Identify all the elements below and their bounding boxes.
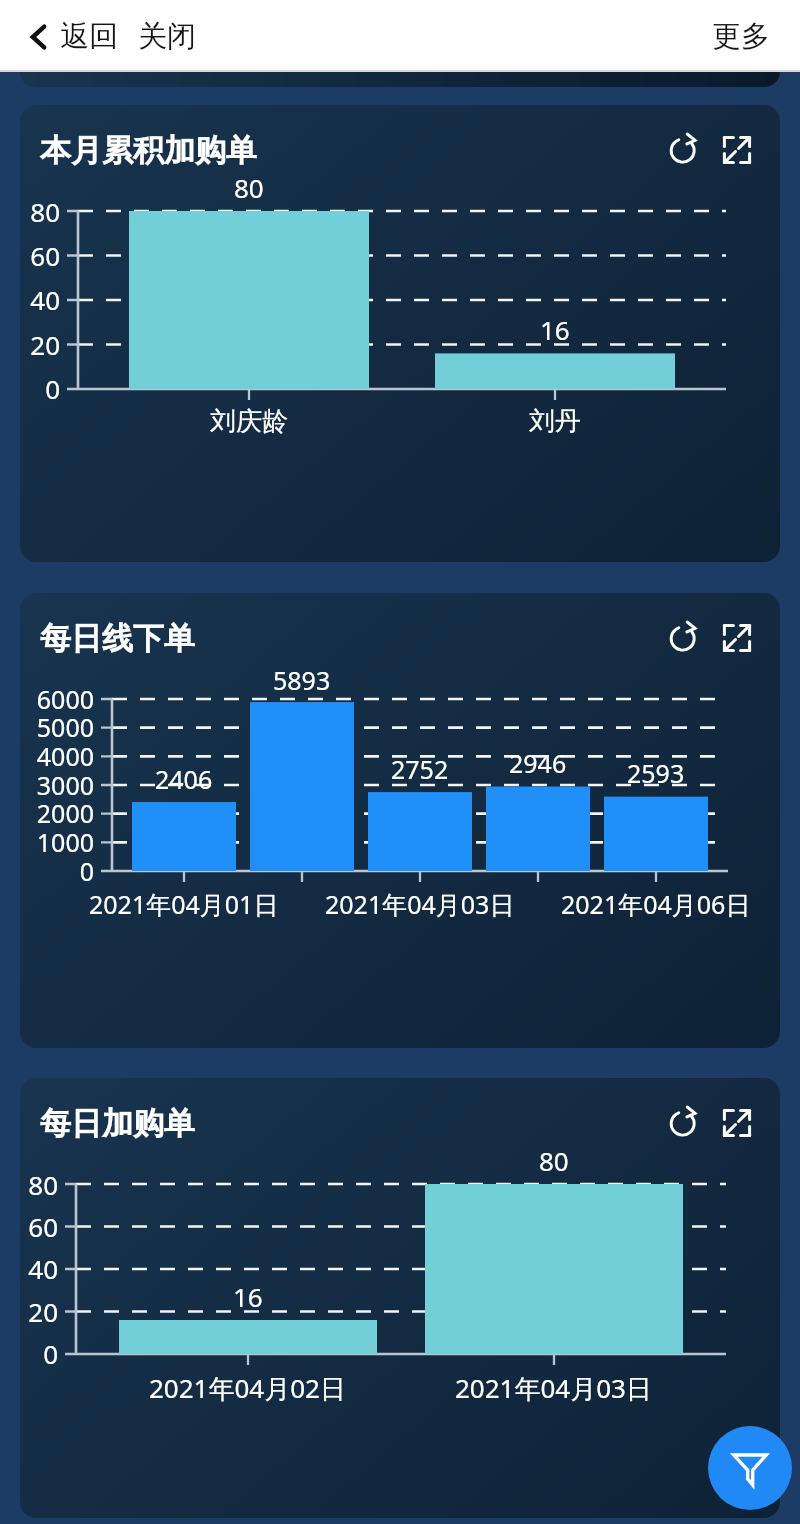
staticText: 16 — [540, 312, 570, 347]
staticText: 2021年04月03日 — [455, 1370, 652, 1406]
staticText: 2021年04月01日 — [89, 887, 279, 921]
staticText: 2406 — [155, 762, 213, 796]
button[interactable]: Refresh — [660, 127, 706, 173]
staticText: 20 — [28, 1294, 58, 1329]
staticText: 5893 — [273, 663, 331, 697]
staticText: 3000 — [36, 768, 94, 802]
staticText: 0 — [43, 1336, 58, 1371]
staticText: 返回 — [60, 18, 118, 55]
staticText: 2593 — [627, 756, 685, 790]
button[interactable]: 更多 — [712, 18, 770, 55]
staticText: 40 — [28, 1251, 58, 1286]
button[interactable]: Back — [26, 18, 122, 55]
staticText: 2021年04月06日 — [561, 887, 751, 921]
button[interactable]: Refresh — [660, 1100, 706, 1146]
staticText: 每日加购单 — [40, 1104, 195, 1143]
button[interactable]: Expand — [714, 615, 760, 661]
staticText: 1000 — [36, 825, 94, 859]
staticText: 16 — [233, 1279, 263, 1314]
staticText: 更多 — [712, 18, 770, 55]
staticText: 60 — [28, 1209, 58, 1244]
staticText: 本月累积加购单 — [40, 131, 257, 170]
staticText: 5000 — [36, 710, 94, 744]
staticText: 2752 — [391, 752, 449, 786]
staticText: 6000 — [36, 682, 94, 716]
staticText: 80 — [539, 1143, 569, 1178]
staticText: 刘庆龄 — [210, 405, 288, 438]
button[interactable]: Expand — [714, 127, 760, 173]
staticText: 20 — [30, 327, 60, 362]
staticText: 4000 — [36, 739, 94, 773]
staticText: 关闭 — [138, 18, 196, 55]
staticText: 60 — [30, 238, 60, 273]
staticText: 80 — [234, 170, 264, 205]
button[interactable]: Expand — [714, 1100, 760, 1146]
button[interactable]: Filter — [708, 1426, 792, 1510]
staticText: 0 — [79, 854, 94, 888]
staticText: 0 — [45, 371, 60, 406]
staticText: 刘丹 — [529, 405, 581, 438]
staticText: 80 — [28, 1167, 58, 1202]
button[interactable]: 本月累积加购单 — [20, 105, 780, 562]
button[interactable]: Refresh — [660, 615, 706, 661]
staticText: 2021年04月03日 — [325, 887, 515, 921]
staticText: 每日线下单 — [40, 619, 195, 658]
staticText: 2000 — [36, 796, 94, 830]
button[interactable]: 关闭 — [138, 18, 196, 55]
staticText: 2021年04月02日 — [149, 1370, 346, 1406]
staticText: 40 — [30, 282, 60, 317]
button[interactable]: 每日线下单 — [20, 593, 780, 1048]
staticText: 2946 — [509, 746, 567, 780]
other: Back — [26, 24, 52, 50]
button[interactable]: 每日加购单 — [20, 1078, 780, 1518]
staticText: 80 — [30, 194, 60, 229]
